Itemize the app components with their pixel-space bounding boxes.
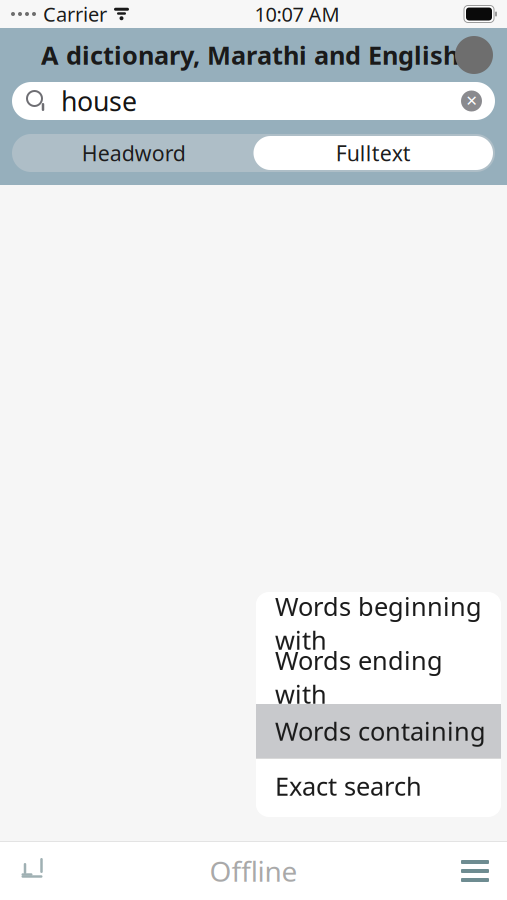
staticText: Words containing [275, 714, 486, 748]
staticText: Headword [82, 139, 186, 167]
button[interactable]: Menu [443, 842, 507, 900]
staticText: 10:07 AM [254, 1, 339, 27]
button[interactable]: Words beginning with [256, 596, 501, 650]
staticText: ✕ [465, 93, 477, 109]
button[interactable]: house [12, 82, 495, 120]
staticText: Words beginning with [275, 589, 482, 657]
staticText: Offline [209, 852, 297, 890]
button[interactable]: Account [441, 30, 507, 80]
button[interactable]: Words ending with [256, 650, 501, 704]
button[interactable]: Fulltext [253, 136, 493, 170]
button[interactable]: Words containing [256, 704, 501, 758]
button[interactable]: Return [0, 842, 64, 900]
button[interactable]: Headword [14, 136, 253, 170]
staticText: A dictionary, Marathi and English. [41, 38, 466, 72]
staticText: Exact search [275, 769, 422, 803]
button[interactable]: Exact search [256, 759, 501, 813]
staticText: Words ending with [275, 643, 443, 711]
staticText: Fulltext [336, 139, 411, 167]
staticText: house [61, 83, 137, 119]
staticText: Carrier [43, 1, 107, 27]
